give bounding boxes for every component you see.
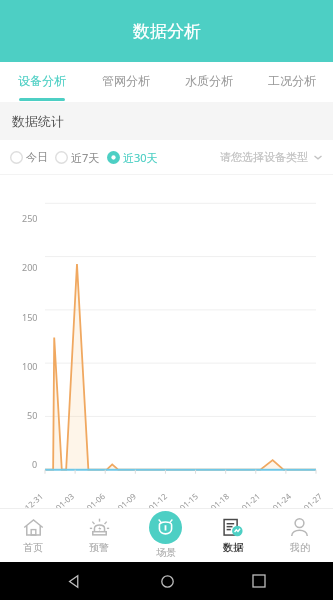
staticText: 水质分析 xyxy=(185,73,233,88)
staticText: 01-03 xyxy=(53,490,76,513)
staticText: 数据分析 xyxy=(133,21,201,42)
button[interactable]: 场景 xyxy=(132,508,199,562)
staticText: 我的 xyxy=(290,541,310,554)
staticText: 0 xyxy=(32,458,38,470)
button[interactable]: 今日 xyxy=(10,150,48,164)
staticText: 设备分析 xyxy=(18,73,66,88)
staticText: 数据 xyxy=(223,541,243,554)
button[interactable]: 数据 xyxy=(199,508,266,562)
staticText: 01-06 xyxy=(84,490,107,513)
button[interactable]: 我的 xyxy=(266,508,333,562)
staticText: 01-24 xyxy=(270,490,293,513)
button[interactable]: 工况分析 xyxy=(250,62,333,98)
staticText: 150 xyxy=(22,311,38,323)
staticText: 01-21 xyxy=(239,490,262,513)
staticText: 工况分析 xyxy=(268,73,316,88)
staticText: 今日 xyxy=(26,150,48,164)
staticText: 50 xyxy=(27,409,38,421)
button[interactable]: Home xyxy=(149,563,185,599)
staticText: 01-15 xyxy=(177,490,200,513)
staticText: 200 xyxy=(22,261,38,273)
button[interactable]: 请您选择设备类型 xyxy=(220,150,323,164)
button[interactable]: 首页 xyxy=(0,508,66,562)
staticText: 100 xyxy=(22,360,38,372)
staticText: 请您选择设备类型 xyxy=(220,150,308,164)
button[interactable]: 设备分析 xyxy=(0,62,84,98)
staticText: 数据统计 xyxy=(12,113,64,129)
button[interactable]: 水质分析 xyxy=(167,62,250,98)
staticText: 首页 xyxy=(23,541,43,554)
button[interactable]: 预警 xyxy=(66,508,132,562)
button[interactable]: Back xyxy=(56,563,92,599)
staticText: 12-31 xyxy=(22,490,45,513)
staticText: 01-12 xyxy=(146,490,169,513)
button[interactable]: 近30天 xyxy=(107,150,158,165)
staticText: 01-09 xyxy=(115,490,138,513)
staticText: 250 xyxy=(22,212,38,224)
staticText: 场景 xyxy=(156,546,176,559)
button[interactable]: Recents xyxy=(241,563,277,599)
button[interactable]: 管网分析 xyxy=(84,62,167,98)
staticText: 管网分析 xyxy=(102,73,150,88)
staticText: 预警 xyxy=(89,541,109,554)
staticText: 01-18 xyxy=(208,490,231,513)
staticText: 近7天 xyxy=(71,150,100,165)
staticText: 01-27 xyxy=(301,490,324,513)
button[interactable]: 近7天 xyxy=(55,150,100,165)
staticText: 近30天 xyxy=(123,150,158,165)
